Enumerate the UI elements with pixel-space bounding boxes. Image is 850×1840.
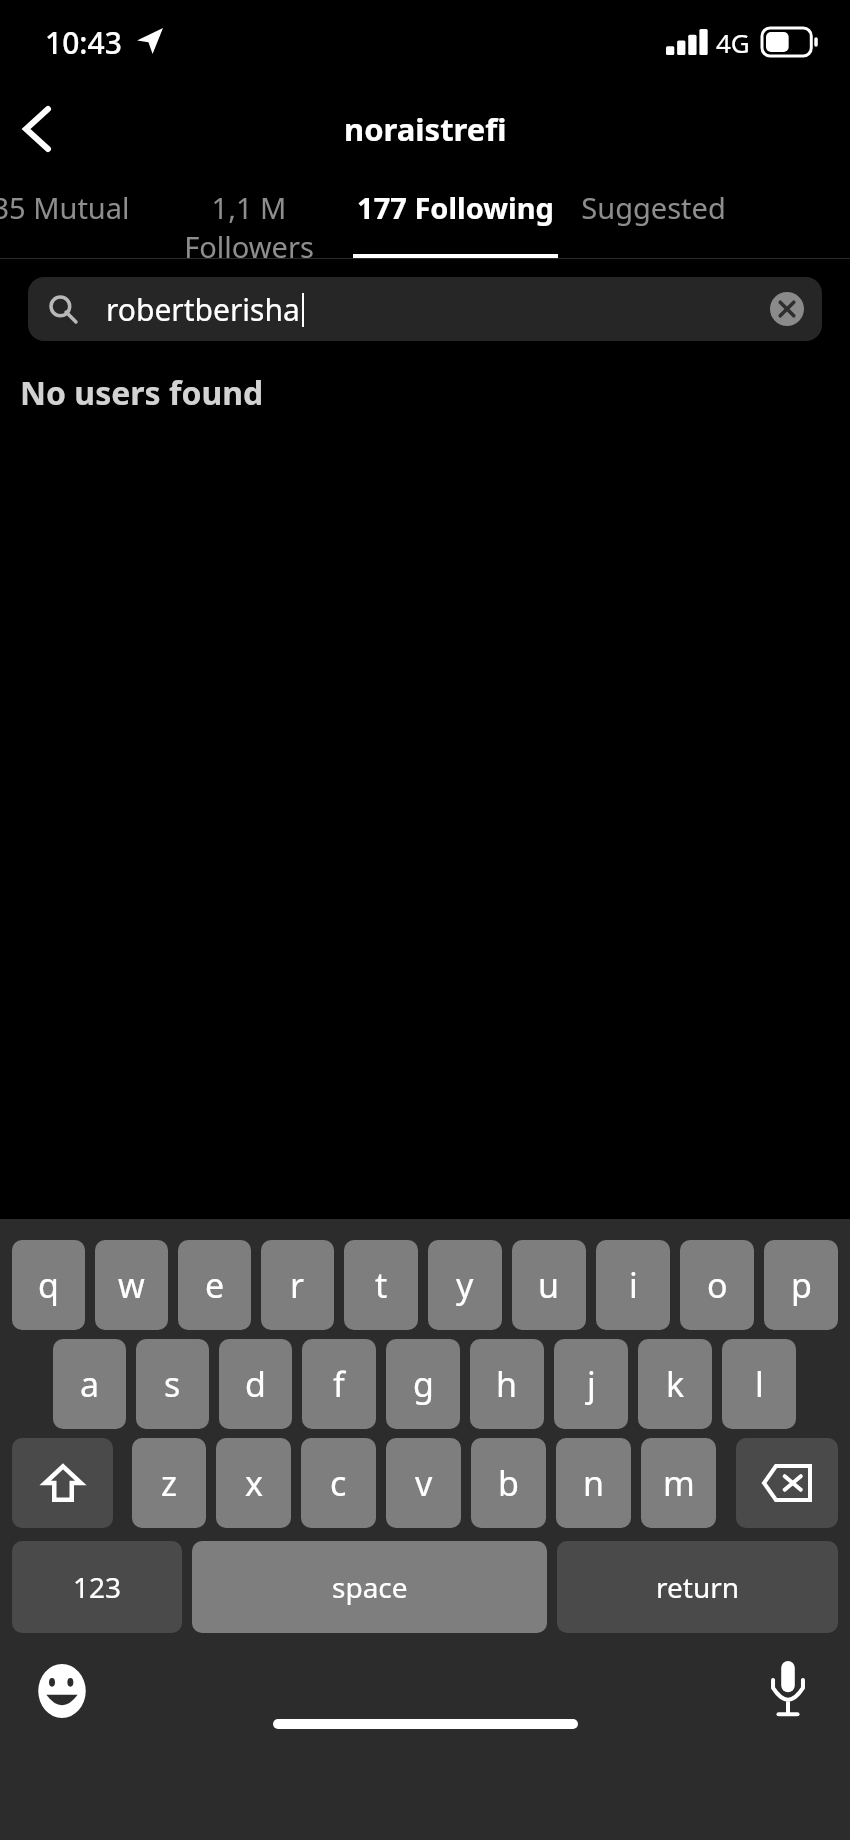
staticText: p bbox=[791, 1262, 812, 1308]
button[interactable]: Back bbox=[0, 92, 74, 166]
button[interactable]: v bbox=[386, 1438, 461, 1528]
staticText: g bbox=[413, 1361, 434, 1407]
button[interactable]: w bbox=[95, 1240, 168, 1330]
button[interactable]: d bbox=[219, 1339, 292, 1429]
staticText: No users found bbox=[20, 371, 264, 415]
button[interactable]: y bbox=[428, 1240, 502, 1330]
button[interactable]: t bbox=[344, 1240, 418, 1330]
staticText: b bbox=[498, 1460, 519, 1506]
staticText: f bbox=[333, 1361, 345, 1407]
staticText: l bbox=[755, 1361, 764, 1407]
staticText: k bbox=[666, 1361, 685, 1407]
button[interactable]: Clear text bbox=[766, 288, 808, 330]
staticText: i bbox=[629, 1262, 638, 1308]
button[interactable]: s bbox=[136, 1339, 209, 1429]
staticText: noraistrefi bbox=[344, 108, 507, 150]
button[interactable]: m bbox=[641, 1438, 716, 1528]
button[interactable]: j bbox=[554, 1339, 628, 1429]
staticText: x bbox=[245, 1460, 263, 1506]
button[interactable]: q bbox=[12, 1240, 85, 1330]
button[interactable]: Suggested bbox=[558, 170, 748, 258]
staticText: s bbox=[164, 1361, 181, 1407]
button[interactable]: Backspace bbox=[736, 1438, 838, 1528]
button[interactable]: 177 Following bbox=[353, 170, 558, 258]
button[interactable]: 35 Mutual bbox=[0, 170, 145, 258]
button[interactable]: e bbox=[178, 1240, 251, 1330]
button[interactable]: return bbox=[557, 1541, 838, 1633]
button[interactable]: a bbox=[53, 1339, 126, 1429]
button[interactable]: k bbox=[638, 1339, 712, 1429]
staticText: h bbox=[496, 1361, 518, 1407]
button[interactable]: space bbox=[192, 1541, 547, 1633]
staticText: z bbox=[161, 1460, 177, 1506]
button[interactable]: p bbox=[764, 1240, 838, 1330]
button[interactable]: 123 bbox=[12, 1541, 182, 1633]
staticText: y bbox=[456, 1262, 474, 1308]
staticText: 177 Following bbox=[357, 188, 554, 227]
staticText: t bbox=[375, 1262, 388, 1308]
staticText: e bbox=[205, 1262, 225, 1308]
staticText: return bbox=[656, 1568, 740, 1606]
staticText: space bbox=[332, 1568, 408, 1606]
staticText: 1,1 M Followers bbox=[145, 188, 353, 258]
button[interactable]: x bbox=[216, 1438, 291, 1528]
staticText: w bbox=[118, 1262, 145, 1308]
staticText: a bbox=[80, 1361, 100, 1407]
staticText: o bbox=[707, 1262, 728, 1308]
staticText: r bbox=[290, 1262, 305, 1308]
button[interactable]: 1,1 M Followers bbox=[145, 170, 353, 258]
button[interactable]: Shift bbox=[12, 1438, 113, 1528]
staticText: 35 Mutual bbox=[0, 188, 130, 227]
button[interactable]: l bbox=[722, 1339, 796, 1429]
button[interactable]: h bbox=[470, 1339, 544, 1429]
staticText: c bbox=[330, 1460, 347, 1506]
staticText: d bbox=[245, 1361, 266, 1407]
button[interactable]: Voice input bbox=[760, 1661, 816, 1717]
staticText: j bbox=[587, 1361, 596, 1407]
button[interactable]: f bbox=[302, 1339, 376, 1429]
button[interactable]: n bbox=[556, 1438, 631, 1528]
button[interactable]: z bbox=[132, 1438, 206, 1528]
staticText: q bbox=[38, 1262, 59, 1308]
staticText: robertberisha bbox=[106, 289, 300, 330]
button[interactable]: o bbox=[680, 1240, 754, 1330]
staticText: n bbox=[583, 1460, 605, 1506]
button[interactable]: i bbox=[596, 1240, 670, 1330]
button[interactable]: Emoji bbox=[34, 1663, 90, 1719]
staticText: v bbox=[415, 1460, 433, 1506]
staticText: 4G bbox=[716, 25, 750, 60]
button[interactable]: c bbox=[301, 1438, 376, 1528]
button[interactable]: g bbox=[386, 1339, 460, 1429]
staticText: Suggested bbox=[581, 188, 726, 227]
button[interactable]: r bbox=[261, 1240, 334, 1330]
button[interactable]: b bbox=[471, 1438, 546, 1528]
staticText: m bbox=[663, 1460, 695, 1506]
button[interactable]: u bbox=[512, 1240, 586, 1330]
staticText: u bbox=[538, 1262, 560, 1308]
staticText: 10:43 bbox=[45, 22, 122, 63]
staticText: 123 bbox=[73, 1568, 122, 1606]
button[interactable]: robertberisha bbox=[28, 277, 822, 341]
